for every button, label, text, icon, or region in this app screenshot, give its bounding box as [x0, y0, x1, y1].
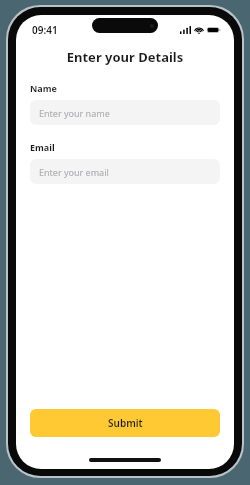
staticText: 09:41	[32, 23, 58, 37]
staticText: Enter your email	[39, 166, 109, 178]
staticText: Email	[30, 141, 55, 153]
other: Wi-Fi	[194, 26, 204, 34]
button[interactable]: Enter your name	[30, 100, 220, 125]
other: Battery	[207, 26, 221, 34]
staticText: Submit	[108, 416, 143, 430]
button[interactable]: Submit	[30, 409, 220, 437]
staticText: Enter your Details	[16, 48, 234, 66]
staticText: Enter your name	[39, 107, 110, 119]
other: Cellular signal	[180, 26, 191, 34]
staticText: Name	[30, 82, 57, 94]
button[interactable]: Enter your email	[30, 159, 220, 184]
